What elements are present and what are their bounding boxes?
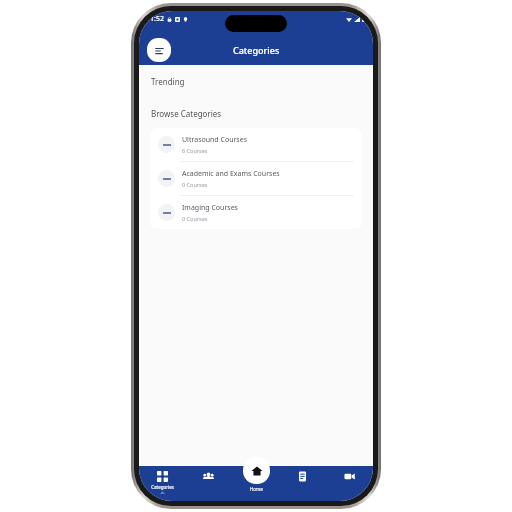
staticText: 0 Courses [182, 215, 208, 222]
button[interactable]: Community [185, 466, 232, 501]
staticText: Categories [233, 44, 280, 56]
button[interactable]: Categories [139, 466, 185, 501]
staticText: 6 Courses [182, 147, 208, 154]
staticText: Ultrasound Courses [182, 135, 248, 145]
button[interactable]: Ultrasound Courses [150, 128, 362, 161]
staticText: 11:52 [146, 14, 164, 24]
button[interactable]: Videos [326, 466, 373, 501]
staticText: Academic and Exams Courses [182, 169, 280, 179]
button[interactable]: Home [243, 457, 270, 484]
button[interactable]: Imaging Courses [150, 196, 362, 229]
staticText: Categories [151, 484, 174, 490]
button[interactable]: Open navigation menu [147, 38, 171, 62]
staticText: 0 Courses [182, 181, 208, 188]
staticText: Imaging Courses [182, 203, 238, 213]
staticText: Home [250, 486, 263, 492]
button[interactable]: Academic and Exams Courses [150, 162, 362, 195]
staticText: Browse Categories [151, 108, 222, 119]
staticText: Trending [151, 76, 185, 87]
button[interactable]: Documents [279, 466, 326, 501]
